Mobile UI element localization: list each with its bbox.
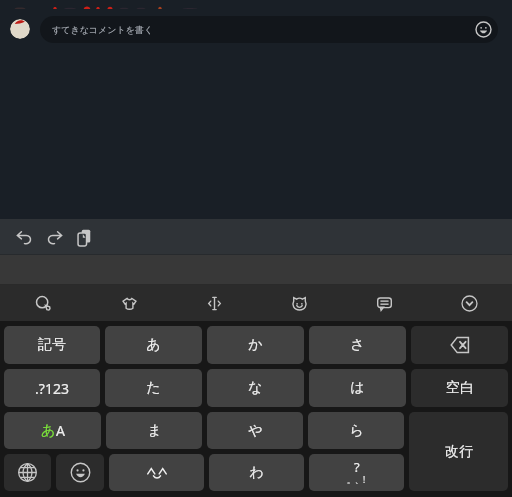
button[interactable]: Text editing <box>172 285 257 321</box>
button[interactable]: Emoji kitchen <box>257 285 342 321</box>
button[interactable]: Redo <box>39 222 69 252</box>
staticText: か <box>248 336 263 354</box>
button[interactable]: Kaomoji <box>109 454 204 491</box>
button[interactable]: か <box>207 326 304 364</box>
button[interactable]: Copy <box>69 222 99 252</box>
staticText: 改行 <box>445 443 473 461</box>
staticText: .?123 <box>35 379 69 398</box>
staticText: A <box>56 421 65 440</box>
button[interactable]: 改行 <box>409 412 508 491</box>
staticText: さ <box>350 336 365 354</box>
staticText: や <box>248 422 263 440</box>
staticText: た <box>146 379 161 397</box>
staticText: ? <box>354 458 360 476</box>
button[interactable]: あ <box>4 412 101 449</box>
button[interactable]: ら <box>308 412 404 449</box>
staticText: すてきなコメントを書く <box>52 24 154 35</box>
staticText: 空白 <box>446 379 474 397</box>
button[interactable]: ? <box>309 454 404 491</box>
button[interactable]: た <box>105 369 202 407</box>
staticText: あ <box>146 336 161 354</box>
button[interactable]: は <box>309 369 406 407</box>
staticText: は <box>350 379 365 397</box>
button[interactable]: Search <box>0 285 86 321</box>
button[interactable]: すてきなコメントを書く <box>40 16 498 43</box>
button[interactable]: ま <box>106 412 202 449</box>
button[interactable]: Profile <box>10 19 30 39</box>
button[interactable]: あ <box>105 326 202 364</box>
staticText: な <box>248 379 263 397</box>
staticText: あ <box>41 422 56 440</box>
button[interactable]: さ <box>309 326 406 364</box>
button[interactable]: Clipboard <box>342 285 427 321</box>
button[interactable]: Collapse keyboard <box>427 285 512 321</box>
button[interactable]: Emoji <box>471 17 496 42</box>
button[interactable]: .?123 <box>4 369 100 407</box>
button[interactable]: Change keyboard <box>4 454 51 491</box>
button[interactable]: Undo <box>9 222 39 252</box>
staticText: ま <box>147 422 162 440</box>
button[interactable]: 記号 <box>4 326 100 364</box>
button[interactable]: や <box>207 412 303 449</box>
button[interactable]: な <box>207 369 304 407</box>
button[interactable]: Emoji <box>56 454 104 491</box>
staticText: わ <box>249 464 264 482</box>
button[interactable]: Backspace <box>411 326 508 364</box>
button[interactable]: Stickers <box>86 285 172 321</box>
staticText: 記号 <box>38 336 66 354</box>
button[interactable]: 空白 <box>411 369 508 407</box>
staticText: 。、! <box>347 474 366 485</box>
button[interactable]: わ <box>209 454 304 491</box>
staticText: ら <box>349 422 364 440</box>
